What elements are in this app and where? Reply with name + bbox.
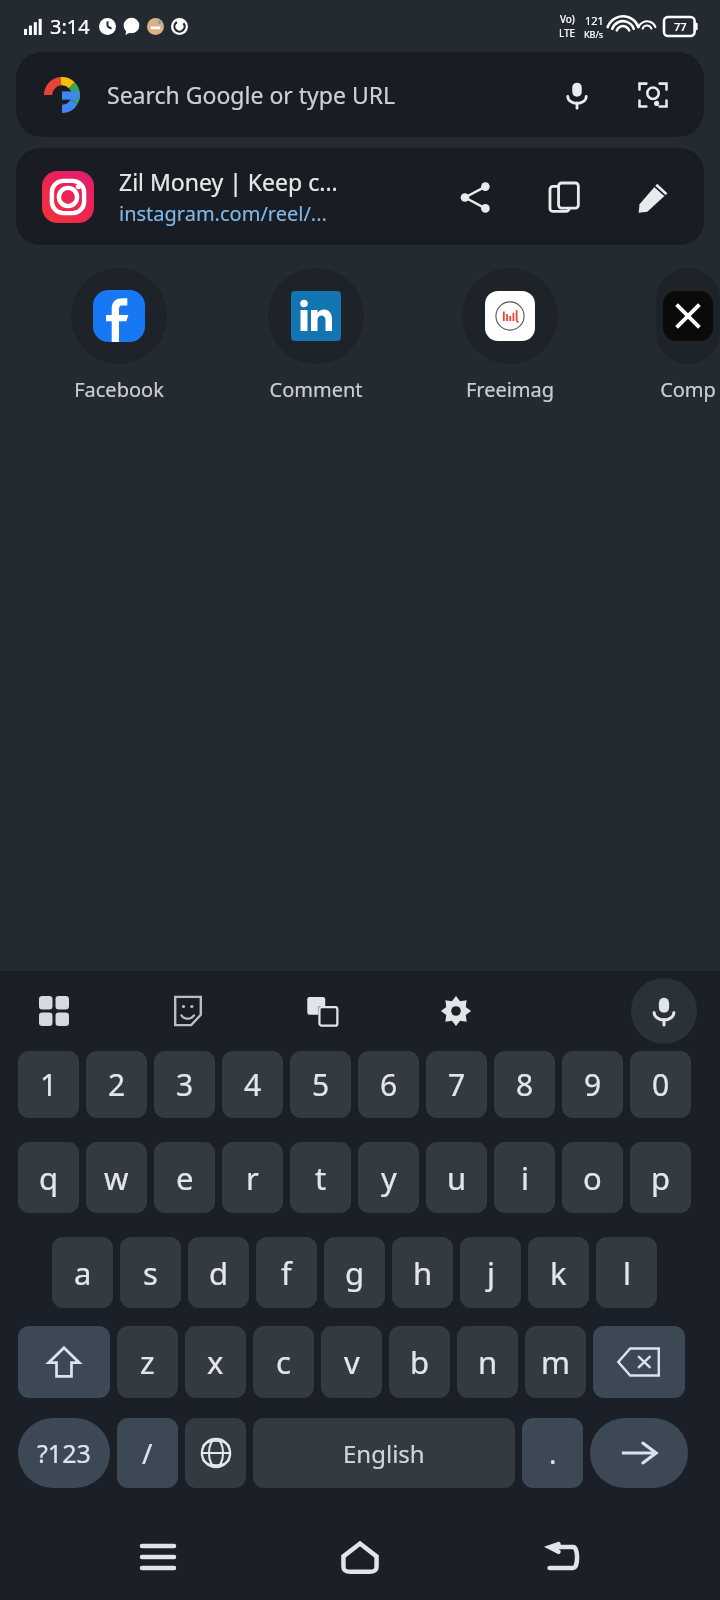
button[interactable]: Facebook <box>71 268 167 403</box>
button[interactable]: Shift <box>18 1326 110 1398</box>
button[interactable]: 3 <box>154 1051 215 1118</box>
button[interactable]: i <box>494 1142 555 1213</box>
button[interactable]: / <box>117 1418 178 1488</box>
button[interactable]: h <box>392 1237 453 1308</box>
staticText: KB/s <box>584 28 604 40</box>
staticText: Facebook <box>74 376 164 403</box>
button[interactable]: b <box>389 1326 450 1398</box>
button[interactable]: f <box>256 1237 317 1308</box>
button[interactable]: s <box>120 1237 181 1308</box>
button[interactable]: Enter <box>590 1418 688 1488</box>
staticText: e <box>176 1157 194 1199</box>
button[interactable]: o <box>562 1142 623 1213</box>
button[interactable]: Freeimage.... <box>462 268 558 403</box>
button[interactable]: 7 <box>426 1051 487 1118</box>
button[interactable]: e <box>154 1142 215 1213</box>
button[interactable]: Google Lens <box>630 72 676 118</box>
button[interactable]: Back <box>518 1514 608 1600</box>
button[interactable]: . <box>522 1418 583 1488</box>
staticText: Zil Money | Keep c... <box>119 166 338 197</box>
staticText: y <box>381 1157 397 1199</box>
staticText: 3 <box>176 1064 194 1105</box>
staticText: . <box>549 1434 557 1472</box>
button[interactable]: g <box>324 1237 385 1308</box>
button[interactable]: j <box>460 1237 521 1308</box>
staticText: w <box>104 1157 129 1199</box>
staticText: Comments ... <box>268 376 364 403</box>
staticText: / <box>142 1434 153 1472</box>
staticText: b <box>410 1341 430 1383</box>
button[interactable]: 1 <box>18 1051 79 1118</box>
button[interactable]: Share <box>448 170 502 224</box>
staticText: f <box>281 1252 292 1294</box>
button[interactable]: Recent apps <box>113 1514 203 1600</box>
button[interactable]: ?123 <box>18 1418 110 1488</box>
button[interactable]: p <box>630 1142 691 1213</box>
button[interactable]: v <box>321 1326 382 1398</box>
staticText: 77 <box>674 19 687 34</box>
staticText: 8 <box>516 1064 534 1105</box>
button[interactable]: Change language <box>185 1418 246 1488</box>
button[interactable]: 4 <box>222 1051 283 1118</box>
button[interactable]: 6 <box>358 1051 419 1118</box>
button[interactable]: w <box>86 1142 147 1213</box>
staticText: r <box>246 1157 259 1199</box>
button[interactable]: Comments ... <box>268 268 364 403</box>
staticText: p <box>651 1157 671 1199</box>
staticText: English <box>343 1437 425 1470</box>
staticText: 2 <box>108 1064 126 1105</box>
button[interactable]: l <box>596 1237 657 1308</box>
button[interactable]: Translate <box>298 987 346 1035</box>
button[interactable]: r <box>222 1142 283 1213</box>
button[interactable]: d <box>188 1237 249 1308</box>
button[interactable]: Clipboard <box>30 987 78 1035</box>
button[interactable]: 0 <box>630 1051 691 1118</box>
staticText: g <box>345 1252 365 1294</box>
staticText: j <box>487 1252 495 1294</box>
button[interactable]: Settings <box>432 987 480 1035</box>
button[interactable]: m <box>525 1326 586 1398</box>
staticText: Freeimage.... <box>462 376 558 403</box>
button[interactable]: n <box>457 1326 518 1398</box>
button[interactable]: Voice input <box>631 978 697 1044</box>
button[interactable]: Copy link <box>537 170 591 224</box>
button[interactable]: x <box>185 1326 246 1398</box>
button[interactable]: a <box>52 1237 113 1308</box>
button[interactable]: Edit <box>626 170 680 224</box>
button[interactable]: 2 <box>86 1051 147 1118</box>
staticText: a <box>74 1252 92 1294</box>
staticText: z <box>140 1341 155 1383</box>
button[interactable]: Search Google or type URL <box>16 52 704 137</box>
staticText: 5 <box>312 1064 330 1105</box>
button[interactable]: English <box>253 1418 515 1488</box>
button[interactable]: 5 <box>290 1051 351 1118</box>
staticText: q <box>39 1157 59 1199</box>
button[interactable]: Zil Money | Keep c... <box>16 148 704 245</box>
staticText: s <box>143 1252 158 1294</box>
button[interactable]: Voice search <box>554 72 600 118</box>
staticText: instagram.com/reel/... <box>119 200 327 227</box>
button[interactable]: Stickers <box>164 987 212 1035</box>
button[interactable]: z <box>117 1326 178 1398</box>
button[interactable]: q <box>18 1142 79 1213</box>
staticText: n <box>478 1341 498 1383</box>
button[interactable]: 9 <box>562 1051 623 1118</box>
staticText: 7 <box>448 1064 466 1105</box>
button[interactable]: Compo <box>656 268 720 403</box>
staticText: 9 <box>584 1064 602 1105</box>
staticText: 0 <box>652 1064 670 1105</box>
button[interactable]: Backspace <box>593 1326 685 1398</box>
button[interactable]: k <box>528 1237 589 1308</box>
button[interactable]: c <box>253 1326 314 1398</box>
button[interactable]: 8 <box>494 1051 555 1118</box>
staticText: 121 <box>585 13 604 28</box>
staticText: t <box>315 1157 327 1199</box>
staticText: d <box>209 1252 229 1294</box>
button[interactable]: y <box>358 1142 419 1213</box>
button[interactable]: u <box>426 1142 487 1213</box>
button[interactable]: t <box>290 1142 351 1213</box>
staticText: k <box>550 1252 567 1294</box>
staticText: m <box>541 1341 570 1383</box>
staticText: Vo) <box>560 12 575 26</box>
button[interactable]: Home <box>315 1514 405 1600</box>
